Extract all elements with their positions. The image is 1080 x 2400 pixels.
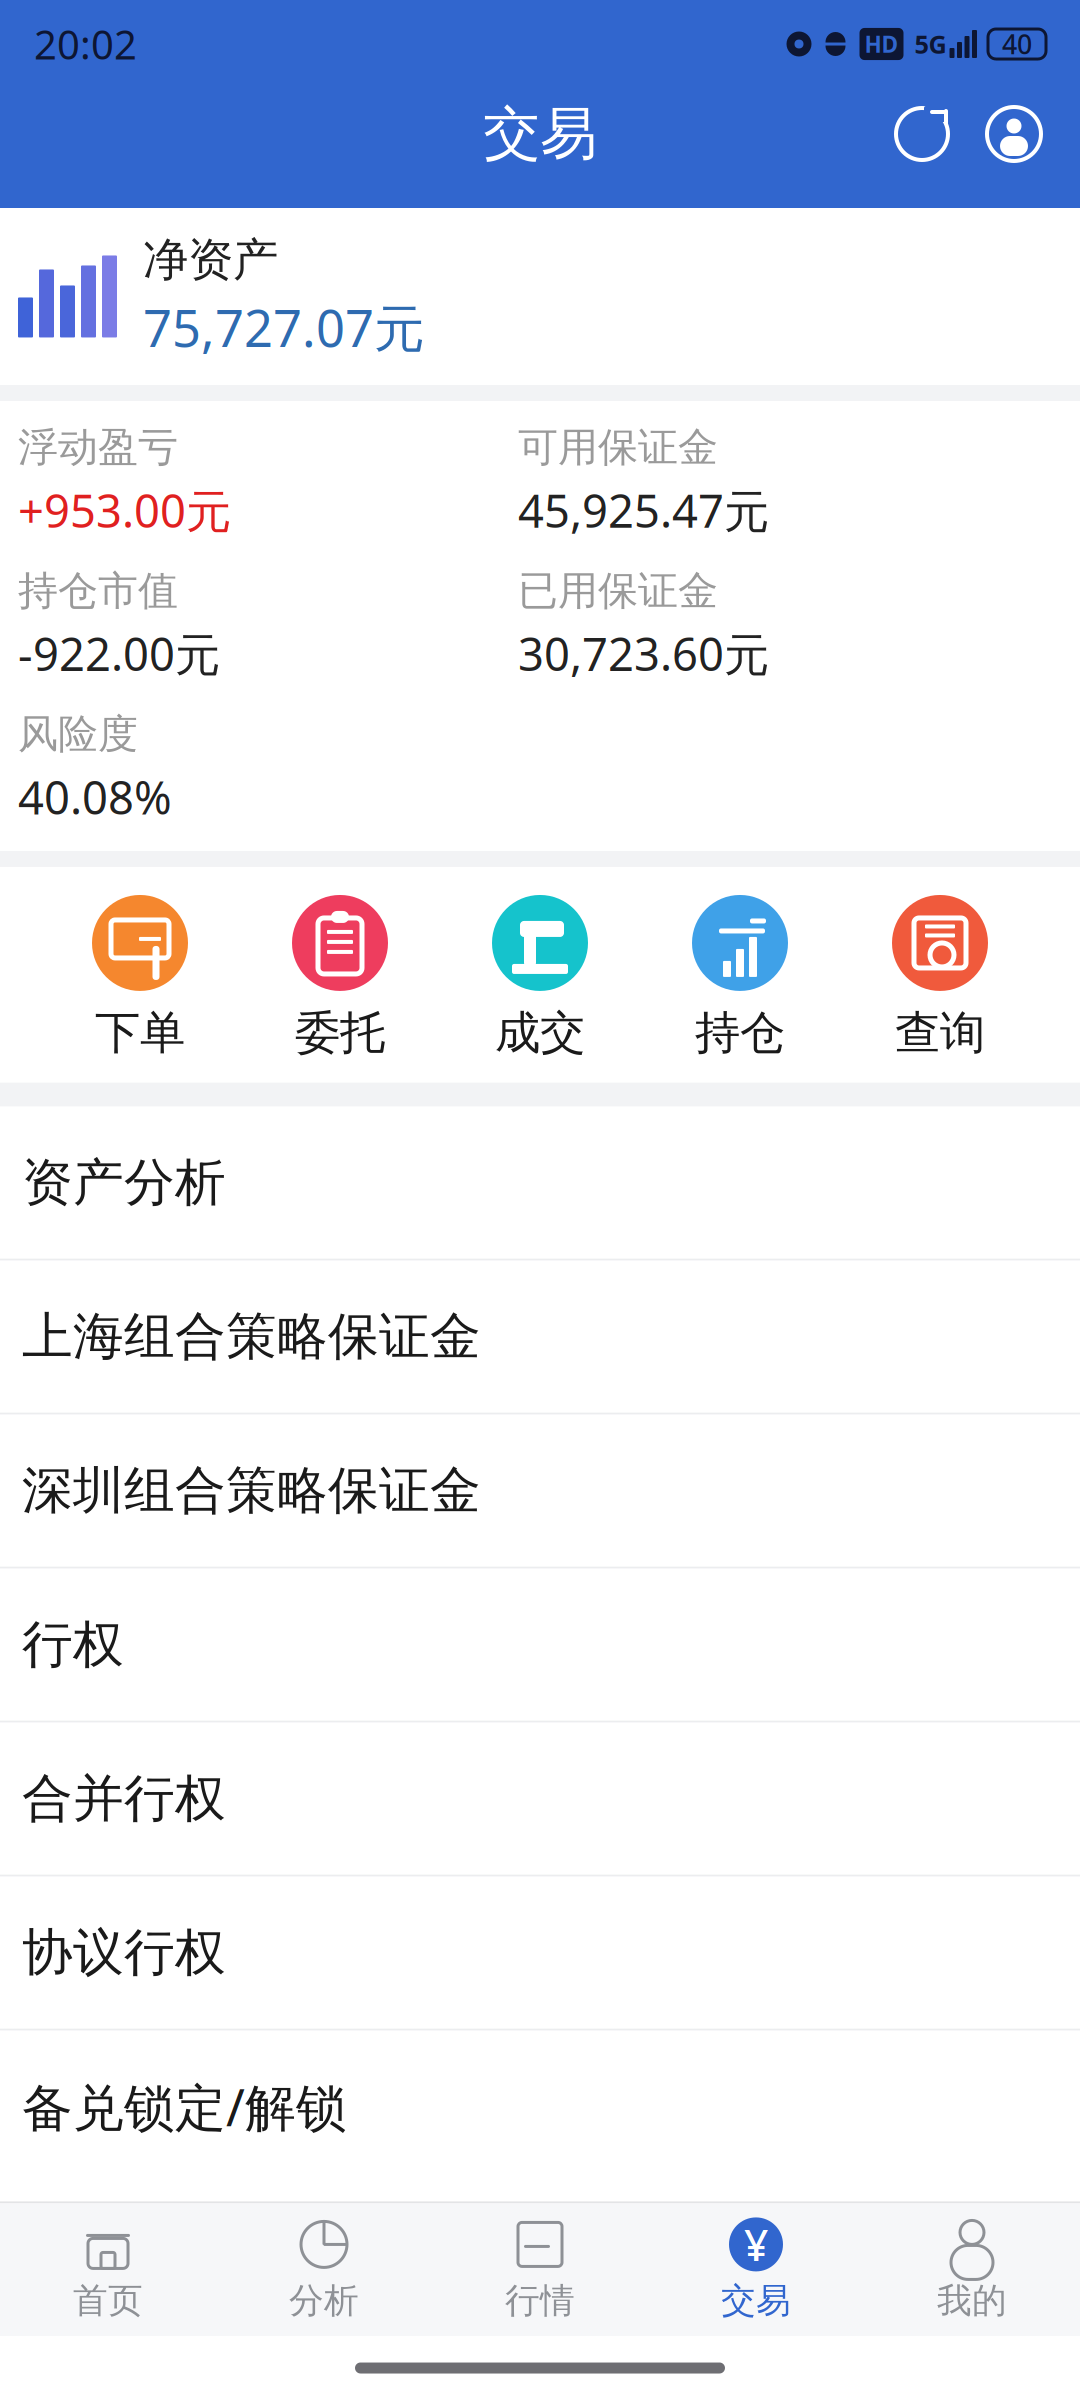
button[interactable]: 我的 [864, 2203, 1080, 2336]
staticText: 协议行权 [22, 1921, 226, 1984]
staticText: 下单 [95, 1005, 185, 1061]
button[interactable]: 成交 [440, 895, 640, 1061]
button[interactable]: 协议行权 [0, 1877, 1080, 2031]
staticText: 20:02 [34, 17, 137, 70]
staticText: 已用保证金 [518, 566, 718, 615]
staticText: 40.08% [18, 767, 172, 827]
button[interactable]: 查询 [840, 895, 1040, 1061]
staticText: 浮动盈亏 [18, 423, 178, 472]
staticText: 交易 [483, 99, 597, 169]
staticText: 可用保证金 [518, 423, 718, 472]
button[interactable]: 持仓 [640, 895, 840, 1061]
button[interactable]: 下单 [40, 895, 240, 1061]
staticText: 40 [1002, 26, 1032, 62]
staticText: 75,727.07元 [143, 294, 425, 361]
staticText: 5G [914, 27, 946, 61]
button[interactable]: 资产分析 [0, 1107, 1080, 1261]
staticText: 净资产 [143, 232, 278, 288]
staticText: 委托 [295, 1005, 385, 1061]
button[interactable]: 账户 [968, 88, 1060, 180]
staticText: 首页 [73, 2279, 143, 2322]
staticText: -922.00元 [18, 623, 220, 684]
button[interactable]: 合并行权 [0, 1723, 1080, 1877]
staticText: 我的 [937, 2279, 1007, 2322]
staticText: 成交 [495, 1005, 585, 1061]
staticText: 30,723.60元 [518, 623, 769, 684]
staticText: 深圳组合策略保证金 [22, 1459, 481, 1522]
button[interactable]: 上海组合策略保证金 [0, 1261, 1080, 1415]
staticText: 行权 [22, 1613, 124, 1676]
button[interactable]: 首页 [0, 2203, 216, 2336]
staticText: ¥ [744, 2216, 768, 2273]
staticText: +953.00元 [18, 480, 231, 540]
staticText: 合并行权 [22, 1767, 226, 1830]
staticText: 备兑锁定/解锁 [22, 2073, 347, 2140]
button[interactable]: 分析 [216, 2203, 432, 2336]
staticText: HD [864, 29, 898, 59]
staticText: 风险度 [18, 710, 138, 759]
staticText: 45,925.47元 [518, 480, 769, 540]
staticText: 上海组合策略保证金 [22, 1305, 481, 1368]
staticText: 行情 [505, 2279, 575, 2322]
staticText: 持仓市值 [18, 566, 178, 615]
staticText: 资产分析 [22, 1151, 226, 1214]
button[interactable]: 委托 [240, 895, 440, 1061]
button[interactable]: 备兑锁定/解锁 [0, 2031, 1080, 2183]
staticText: 查询 [895, 1005, 985, 1061]
button[interactable]: 深圳组合策略保证金 [0, 1415, 1080, 1569]
staticText: 持仓 [695, 1005, 785, 1061]
button[interactable]: ¥ [648, 2203, 864, 2336]
button[interactable]: 行情 [432, 2203, 648, 2336]
staticText: 交易 [721, 2279, 791, 2322]
button[interactable]: 刷新 [876, 88, 968, 180]
staticText: 分析 [289, 2279, 359, 2322]
button[interactable]: 行权 [0, 1569, 1080, 1723]
